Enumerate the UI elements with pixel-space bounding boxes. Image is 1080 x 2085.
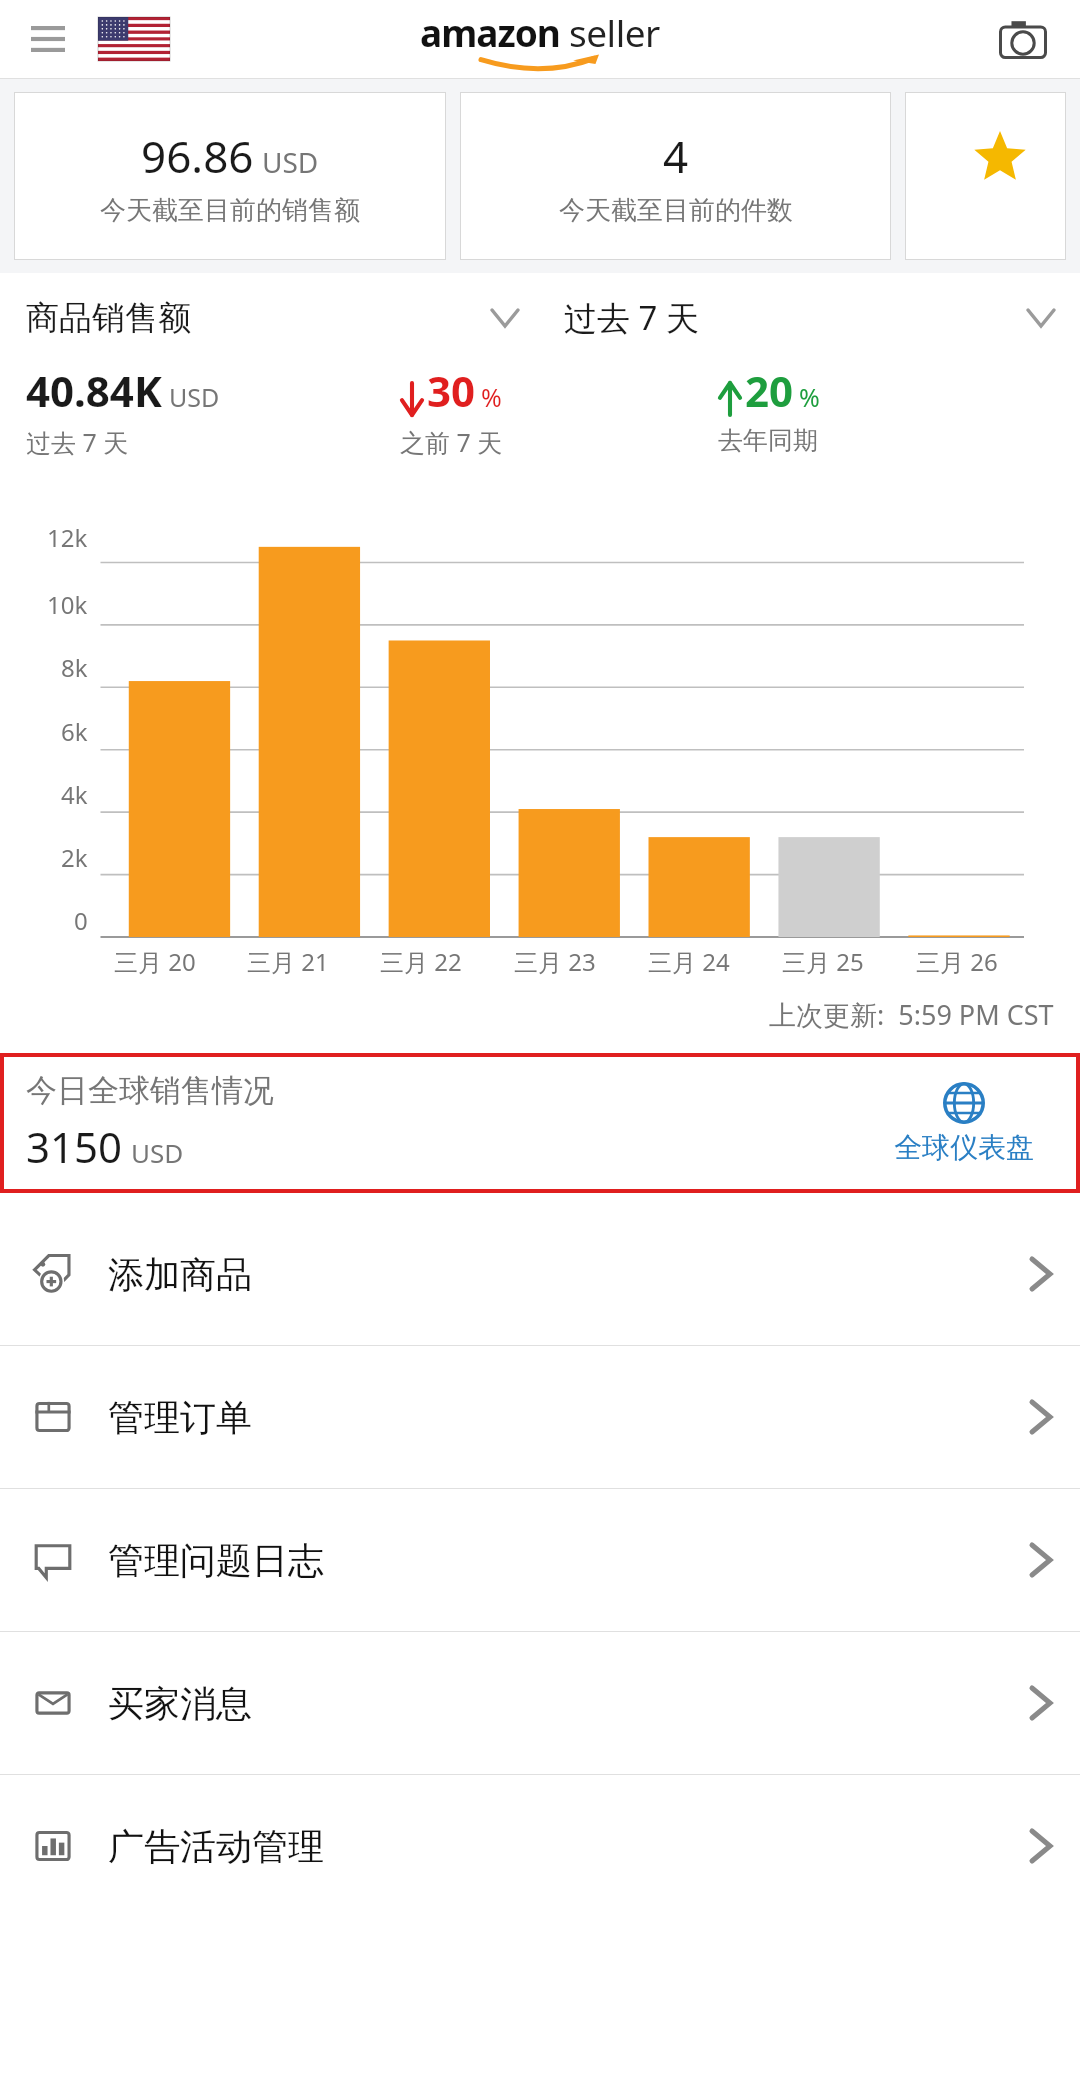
staticText: 广告活动管理 — [108, 1824, 324, 1869]
button[interactable]: 96.86 — [14, 92, 446, 260]
staticText: 上次更新: 5:59 PM CST — [769, 996, 1054, 1033]
staticText: 管理问题日志 — [108, 1538, 324, 1583]
button[interactable]: 广告活动管理 — [0, 1775, 1080, 1917]
staticText: 4 — [663, 126, 689, 186]
staticText: 10k — [47, 588, 88, 621]
staticText: 全球仪表盘 — [894, 1130, 1034, 1165]
staticText: % — [481, 380, 502, 414]
button[interactable]: Scan product with camera — [990, 6, 1056, 72]
staticText: 30 — [427, 362, 476, 419]
staticText: USD — [131, 1135, 184, 1170]
staticText: 去年同期 — [718, 425, 818, 456]
button[interactable]: 全球仪表盘 — [894, 1082, 1034, 1165]
staticText: USD — [169, 380, 220, 414]
staticText: 添加商品 — [108, 1252, 252, 1297]
staticText: 三月 24 — [648, 945, 730, 978]
staticText: 三月 20 — [114, 945, 196, 978]
staticText: 今日全球销售情况 — [26, 1071, 274, 1110]
button[interactable]: 今日全球销售情况 — [0, 1053, 1080, 1193]
staticText: amazon — [420, 7, 560, 57]
button[interactable]: 添加商品 — [0, 1203, 1080, 1345]
staticText: 之前 7 天 — [400, 425, 503, 459]
staticText: 三月 22 — [380, 945, 462, 978]
button[interactable]: Marketplace United States — [96, 13, 172, 65]
staticText: 3150 — [26, 1118, 123, 1175]
staticText: 6k — [61, 715, 88, 748]
button[interactable]: 管理问题日志 — [0, 1489, 1080, 1631]
staticText: 12k — [47, 521, 88, 554]
staticText: 96.86 — [141, 126, 254, 186]
button[interactable]: 管理订单 — [0, 1346, 1080, 1488]
staticText: 三月 23 — [514, 945, 596, 978]
button[interactable]: 买家消息 — [0, 1632, 1080, 1774]
staticText: 三月 25 — [782, 945, 864, 978]
staticText: 4k — [61, 778, 88, 811]
button[interactable]: Feedback rating — [905, 92, 1066, 260]
staticText: 2k — [61, 841, 88, 874]
button[interactable]: Menu — [18, 9, 78, 69]
staticText: 商品销售额 — [26, 297, 191, 339]
staticText: 40.84K — [26, 362, 162, 419]
staticText: 今天截至目前的销售额 — [100, 194, 360, 227]
staticText: 买家消息 — [108, 1681, 252, 1726]
button[interactable]: 商品销售额 — [26, 289, 540, 347]
staticText: 过去 7 天 — [26, 425, 129, 459]
staticText: 20 — [745, 362, 794, 419]
staticText: 过去 7 天 — [564, 295, 700, 340]
staticText: % — [799, 380, 820, 414]
staticText: seller — [569, 7, 660, 57]
staticText: 管理订单 — [108, 1395, 252, 1440]
button[interactable]: 4 — [460, 92, 891, 260]
staticText: 三月 26 — [916, 945, 998, 978]
staticText: 0 — [74, 904, 88, 937]
staticText: 8k — [61, 651, 88, 684]
button[interactable]: 过去 7 天 — [540, 287, 1054, 348]
staticText: 三月 21 — [247, 945, 329, 978]
staticText: 今天截至目前的件数 — [559, 194, 793, 227]
staticText: USD — [262, 143, 319, 181]
